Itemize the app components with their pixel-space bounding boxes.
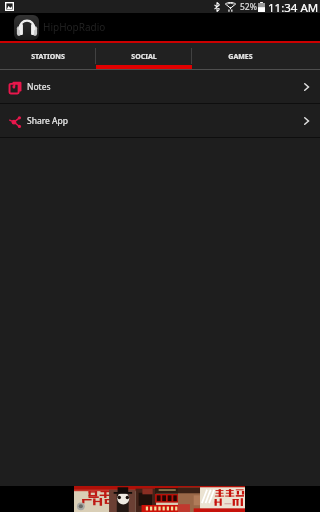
button[interactable]: GAMES bbox=[192, 43, 288, 70]
button[interactable]: Advertisement bbox=[74, 486, 245, 512]
staticText: Notes bbox=[27, 81, 51, 93]
button[interactable]: STATIONS bbox=[0, 43, 96, 70]
button[interactable]: Share App bbox=[0, 104, 320, 137]
staticText: 11:34 AM bbox=[268, 0, 319, 13]
staticText: 52% bbox=[240, 1, 257, 13]
staticText: GAMES bbox=[228, 52, 253, 62]
staticText: SOCIAL bbox=[131, 52, 157, 62]
staticText: HipHopRadio bbox=[43, 20, 106, 34]
staticText: Share App bbox=[27, 115, 68, 127]
staticText: STATIONS bbox=[31, 52, 65, 62]
button[interactable]: SOCIAL bbox=[96, 43, 192, 70]
button[interactable]: Notes bbox=[0, 70, 320, 103]
